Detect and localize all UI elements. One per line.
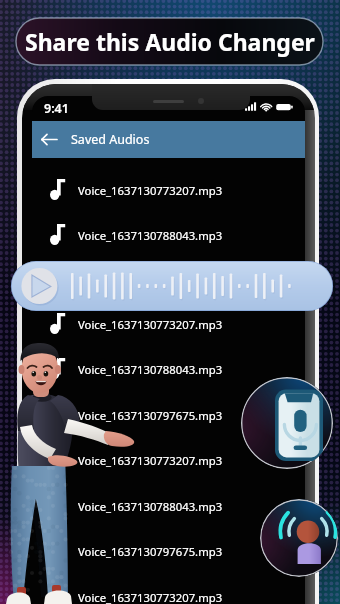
staticText: Voice_1637130773207.mp3 (78, 183, 223, 198)
button[interactable]: Voice recorder (241, 377, 333, 469)
button[interactable]: Voice_1637130788043.mp3 (32, 489, 305, 523)
staticText: 9:41 (44, 100, 69, 117)
button[interactable]: Voice changer (260, 499, 338, 577)
staticText: Share this Audio Changer (25, 26, 315, 57)
button[interactable]: Voice_1637130773207.mp3 (32, 173, 305, 207)
staticText: Voice_1637130773207.mp3 (78, 317, 223, 332)
button[interactable]: Voice_1637130773207.mp3 (32, 580, 305, 604)
button[interactable]: Voice_1637130773207.mp3 (32, 443, 305, 477)
button[interactable]: Voice_1637130788043.mp3 (32, 352, 305, 386)
staticText: Voice_1637130788043.mp3 (78, 362, 223, 377)
staticText: Voice_1637130788043.mp3 (78, 228, 223, 243)
other: Back (41, 133, 57, 146)
staticText: Saved Audios (71, 131, 150, 148)
staticText: Voice_1637130773207.mp3 (78, 590, 223, 604)
button[interactable]: Share this Audio Changer (16, 18, 323, 65)
button[interactable] (11, 261, 333, 311)
staticText: Voice_1637130797675.mp3 (78, 408, 223, 423)
button[interactable]: Voice_1637130797675.mp3 (32, 534, 305, 568)
button[interactable]: Voice_1637130797675.mp3 (32, 398, 305, 432)
staticText: Voice_1637130773207.mp3 (78, 453, 223, 468)
staticText: Voice_1637130797675.mp3 (78, 544, 223, 559)
button[interactable]: Voice_1637130773207.mp3 (32, 307, 305, 341)
staticText: Voice_1637130788043.mp3 (78, 499, 223, 514)
button[interactable]: Voice_1637130788043.mp3 (32, 218, 305, 252)
button[interactable]: Back (32, 121, 305, 158)
